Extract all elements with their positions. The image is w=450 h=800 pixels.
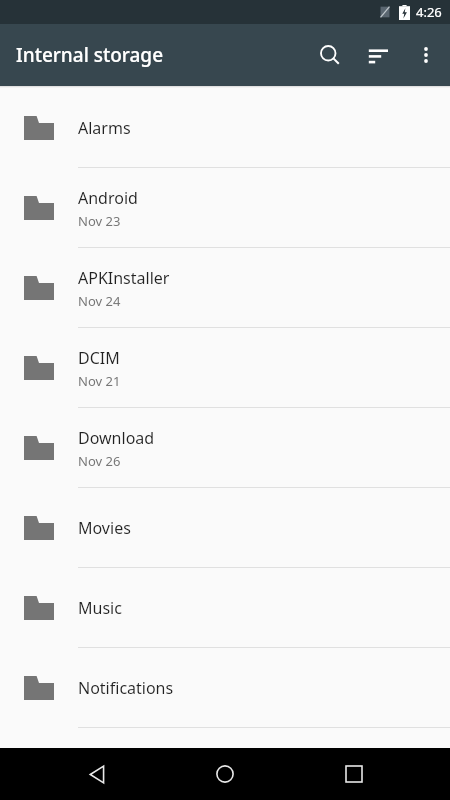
staticText: Nov 23 [78, 212, 121, 230]
button[interactable]: Android [0, 168, 450, 248]
button[interactable]: Back [65, 748, 129, 800]
button[interactable]: More options [402, 31, 450, 79]
staticText: DCIM [78, 347, 120, 369]
button[interactable]: DCIM [0, 328, 450, 408]
staticText: Nov 26 [78, 452, 121, 470]
button[interactable]: Recent apps [322, 748, 386, 800]
staticText: 4:26 [416, 3, 442, 21]
staticText: Android [78, 187, 138, 209]
button[interactable]: Movies [0, 488, 450, 568]
staticText: Music [78, 597, 122, 619]
staticText: Notifications [78, 677, 174, 699]
staticText: Movies [78, 517, 131, 539]
staticText: Alarms [78, 117, 131, 139]
button[interactable]: Music [0, 568, 450, 648]
button[interactable]: Alarms [0, 88, 450, 168]
button[interactable]: APKInstaller [0, 248, 450, 328]
staticText: APKInstaller [78, 267, 170, 289]
button[interactable]: Search [306, 31, 354, 79]
staticText: Download [78, 427, 155, 449]
button[interactable]: Sort [354, 31, 402, 79]
button[interactable]: Notifications [0, 648, 450, 728]
staticText: Internal storage [16, 42, 164, 68]
button[interactable]: Home [193, 748, 257, 800]
staticText: Nov 24 [78, 292, 121, 310]
staticText: Nov 21 [78, 372, 121, 390]
button[interactable]: Download [0, 408, 450, 488]
